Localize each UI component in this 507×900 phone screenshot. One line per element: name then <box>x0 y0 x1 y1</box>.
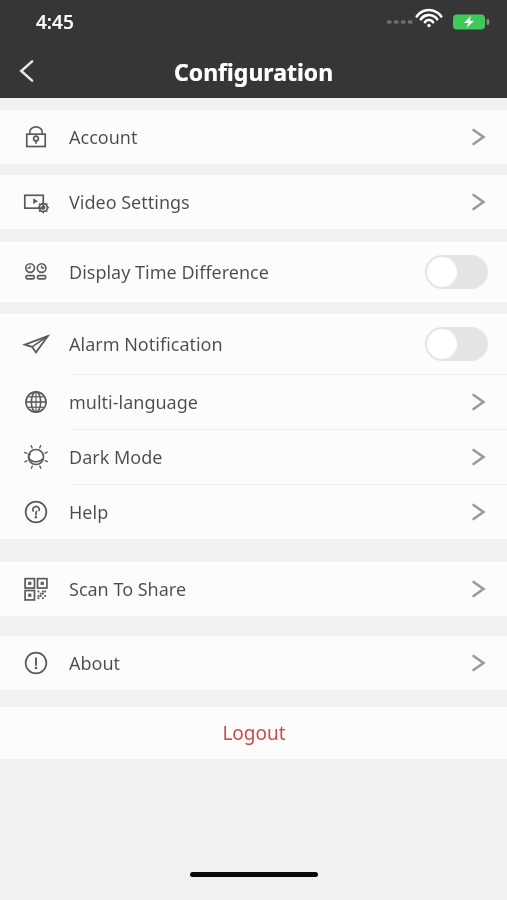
button[interactable]: Toggle Alarm Notification <box>425 327 488 361</box>
staticText: Help <box>69 500 109 525</box>
staticText: Configuration <box>174 56 334 87</box>
staticText: multi-language <box>69 390 198 415</box>
staticText: Scan To Share <box>69 577 187 602</box>
button[interactable]: Video Settings <box>0 175 507 229</box>
staticText: About <box>69 651 121 676</box>
button[interactable]: Logout <box>0 707 507 759</box>
button[interactable]: Dark Mode <box>0 430 507 484</box>
button[interactable]: Scan To Share <box>0 562 507 616</box>
button[interactable]: Alarm Notification <box>0 314 507 374</box>
button[interactable]: Account <box>0 110 507 164</box>
staticText: Account <box>69 125 138 150</box>
button[interactable]: multi-language <box>0 375 507 429</box>
staticText: Alarm Notification <box>69 332 223 357</box>
staticText: Dark Mode <box>69 445 163 470</box>
staticText: Logout <box>222 720 286 746</box>
button[interactable]: About <box>0 636 507 690</box>
button[interactable]: Help <box>0 485 507 539</box>
staticText: Video Settings <box>69 190 190 215</box>
button[interactable]: Back <box>0 44 54 98</box>
button[interactable]: Display Time Difference <box>0 242 507 302</box>
staticText: Display Time Difference <box>69 260 269 285</box>
button[interactable]: Toggle Display Time Difference <box>425 255 488 289</box>
staticText: 4:45 <box>36 9 74 35</box>
